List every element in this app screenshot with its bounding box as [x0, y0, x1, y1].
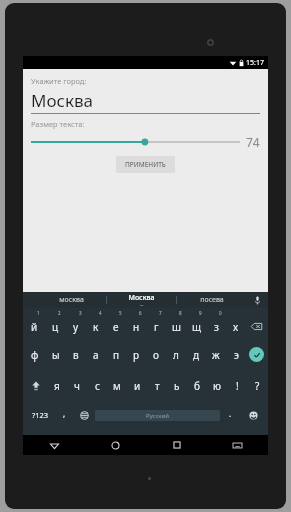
- staticText: 7: [159, 310, 162, 316]
- button[interactable]: 2: [45, 308, 66, 339]
- staticText: д: [193, 348, 200, 362]
- staticText: ю: [213, 379, 221, 393]
- staticText: м: [113, 379, 121, 393]
- button[interactable]: х: [226, 308, 246, 339]
- button[interactable]: я: [47, 370, 67, 401]
- staticText: ч: [74, 379, 80, 393]
- staticText: й: [31, 320, 38, 334]
- staticText: •••: [140, 304, 144, 308]
- button[interactable]: ж: [206, 339, 226, 370]
- button[interactable]: ч: [67, 370, 87, 401]
- button[interactable]: 8: [166, 308, 186, 339]
- staticText: 4: [99, 310, 102, 316]
- staticText: с: [95, 379, 100, 393]
- button[interactable]: ь: [167, 370, 187, 401]
- staticText: посева: [200, 295, 224, 305]
- button[interactable]: т: [147, 370, 167, 401]
- staticText: л: [173, 348, 179, 362]
- staticText: Размер текста:: [31, 119, 85, 129]
- button[interactable]: .: [220, 401, 240, 429]
- staticText: ?123: [32, 410, 49, 420]
- button[interactable]: м: [107, 370, 127, 401]
- button[interactable]: д: [186, 339, 206, 370]
- staticText: х: [233, 320, 239, 334]
- button[interactable]: а: [86, 339, 106, 370]
- button[interactable]: б: [187, 370, 207, 401]
- staticText: ц: [52, 320, 59, 334]
- button[interactable]: посева: [177, 292, 246, 308]
- staticText: б: [194, 379, 200, 393]
- staticText: 3: [79, 310, 82, 316]
- button[interactable]: москва: [37, 292, 106, 308]
- staticText: Укажите город:: [31, 76, 87, 86]
- button[interactable]: Home: [85, 435, 146, 455]
- button[interactable]: 5: [106, 308, 126, 339]
- button[interactable]: 3: [66, 308, 86, 339]
- button[interactable]: 7: [146, 308, 166, 339]
- button[interactable]: Москва: [107, 292, 176, 308]
- staticText: п: [113, 348, 120, 362]
- button[interactable]: ы: [45, 339, 66, 370]
- button[interactable]: ?: [247, 370, 267, 401]
- button[interactable]: Emoji: [240, 401, 266, 429]
- button[interactable]: 0: [206, 308, 226, 339]
- button[interactable]: 9: [186, 308, 206, 339]
- button[interactable]: Change language: [73, 401, 95, 429]
- button[interactable]: ю: [207, 370, 227, 401]
- button[interactable]: [31, 135, 240, 149]
- staticText: я: [54, 379, 60, 393]
- button[interactable]: 4: [86, 308, 106, 339]
- button[interactable]: !: [227, 370, 247, 401]
- button[interactable]: р: [126, 339, 146, 370]
- button[interactable]: ,: [55, 401, 73, 429]
- staticText: 5: [119, 310, 122, 316]
- staticText: к: [93, 320, 99, 334]
- staticText: у: [73, 320, 79, 334]
- button[interactable]: Русский: [95, 410, 220, 421]
- button[interactable]: Voice input: [246, 292, 268, 308]
- staticText: н: [133, 320, 140, 334]
- staticText: Русский: [146, 412, 169, 420]
- staticText: в: [73, 348, 79, 362]
- staticText: ?: [255, 379, 260, 393]
- button[interactable]: ф: [24, 339, 45, 370]
- button[interactable]: 1: [24, 308, 45, 339]
- staticText: ,: [63, 408, 66, 419]
- staticText: э: [234, 348, 239, 362]
- staticText: а: [93, 348, 99, 362]
- staticText: ж: [212, 348, 220, 362]
- button[interactable]: Shift: [24, 370, 47, 401]
- staticText: москва: [59, 295, 84, 305]
- button[interactable]: с: [87, 370, 107, 401]
- button[interactable]: л: [166, 339, 186, 370]
- staticText: 6: [139, 310, 142, 316]
- staticText: з: [214, 320, 219, 334]
- button[interactable]: о: [146, 339, 166, 370]
- button[interactable]: Back: [23, 435, 85, 455]
- button[interactable]: ПРИМЕНИТЬ: [116, 156, 175, 173]
- staticText: е: [113, 320, 119, 334]
- staticText: ш: [172, 320, 181, 334]
- button[interactable]: Backspace: [246, 308, 267, 339]
- staticText: 8: [179, 310, 182, 316]
- staticText: .: [229, 408, 232, 419]
- button[interactable]: п: [106, 339, 126, 370]
- button[interactable]: Keyboard: [207, 435, 268, 455]
- staticText: Москва: [31, 89, 93, 112]
- staticText: ы: [52, 348, 60, 362]
- button[interactable]: и: [127, 370, 147, 401]
- staticText: 74: [246, 134, 260, 150]
- button[interactable]: Recent apps: [146, 435, 207, 455]
- button[interactable]: ?123: [25, 401, 55, 429]
- button[interactable]: 6: [126, 308, 146, 339]
- staticText: ь: [174, 379, 180, 393]
- staticText: 15:17: [246, 58, 264, 68]
- staticText: т: [155, 379, 160, 393]
- staticText: 1: [37, 310, 40, 316]
- button[interactable]: э: [226, 339, 246, 370]
- staticText: 9: [199, 310, 202, 316]
- button[interactable]: Москва: [31, 89, 260, 114]
- staticText: 2: [58, 310, 61, 316]
- button[interactable]: в: [66, 339, 86, 370]
- button[interactable]: Enter: [246, 339, 267, 370]
